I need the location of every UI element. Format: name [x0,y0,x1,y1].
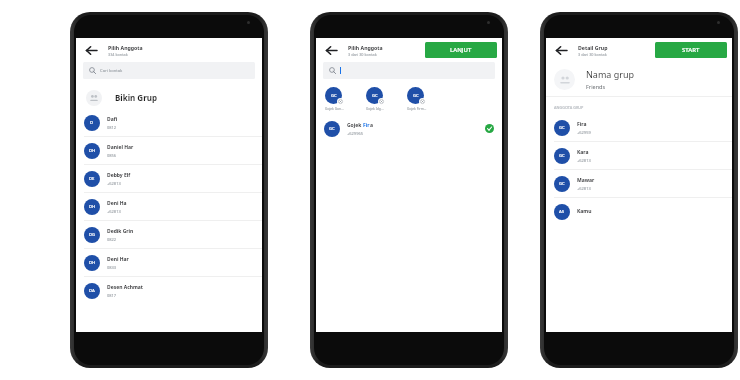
button[interactable]: Nama grup [586,68,724,90]
staticText: 334 kontak [108,52,128,57]
staticText: DE [89,176,95,182]
button[interactable]: DG [76,221,262,249]
staticText: GC [329,126,335,132]
staticText: Deni Har [107,256,129,263]
button[interactable]: DH [76,137,262,165]
staticText: Pilih Anggota [348,44,383,51]
staticText: +62813 [107,209,121,214]
button[interactable]: D [76,109,262,137]
button[interactable]: GC [325,87,359,110]
staticText: a [370,122,373,129]
button[interactable]: GC [407,87,441,110]
staticText: Bikin Grup [115,92,157,103]
staticText: +62813 [577,186,591,191]
button[interactable]: GC [546,170,732,198]
staticText: Pilih Anggota [108,44,143,51]
staticText: Daniel Har [107,144,134,151]
staticText: Kamu [577,208,592,215]
staticText: Fir [363,122,370,129]
staticText: Dafi [107,116,118,123]
staticText: DG [89,232,96,238]
staticText: GC [559,181,565,187]
staticText: Cari kontak [100,68,123,74]
button[interactable]: GC [366,87,400,110]
button[interactable]: Bikin Grup [82,85,184,110]
staticText: 0856 [107,153,117,158]
staticText: Nama grup [586,68,635,80]
button[interactable]: DH [76,193,262,221]
staticText: +629965 [347,131,364,136]
staticText: KONTAK GOJEK [84,101,110,106]
staticText: Gojek Firm… [407,106,427,110]
staticText: GC [331,93,337,99]
staticText: 0822 [107,237,117,242]
staticText: 3 dari 30 kontak [348,52,377,57]
staticText: +62813 [107,181,121,186]
staticText: D [90,120,94,126]
staticText: Gojek [347,122,363,129]
staticText: 0812 [107,125,117,130]
staticText: DH [89,260,96,266]
staticText: 0833 [107,265,117,270]
staticText: DA [89,288,95,294]
staticText: Deni Ha [107,200,127,207]
button[interactable]: Cari kontak [83,62,255,79]
staticText: Fira [577,121,587,128]
button[interactable]: DA [76,277,262,304]
staticText: AS [559,209,565,215]
button[interactable]: GC [546,114,732,142]
staticText: ANGGOTA GRUP [554,105,584,110]
button[interactable]: LANJUT [425,42,497,58]
staticText: GC [372,93,378,99]
button[interactable]: DE [76,165,262,193]
staticText: Kara [577,149,589,156]
staticText: +62813 [577,158,591,163]
button[interactable]: Back [553,42,569,58]
button[interactable]: AS [546,198,732,225]
staticText: Detail Grup [578,44,608,51]
button[interactable]: Back [323,42,339,58]
staticText: GC [413,93,419,99]
staticText: START [682,46,700,54]
staticText: LANJUT [450,46,472,54]
button[interactable]: Back [83,42,99,58]
staticText: GC [559,153,565,159]
staticText: Debby Elf [107,172,131,179]
button[interactable]: DH [76,249,262,277]
staticText: Friends [586,83,606,90]
staticText: Gojek Idg… [366,106,384,110]
staticText: Mawar [577,177,595,184]
staticText: Dedik Grin [107,228,134,235]
button[interactable]: GC [316,115,502,142]
staticText: DH [89,148,96,154]
staticText: +62959 [577,130,591,135]
staticText: 0817 [107,293,117,298]
button[interactable]: GC [546,142,732,170]
button[interactable] [323,62,495,79]
staticText: Gojek Gan… [325,106,344,110]
button[interactable]: START [655,42,727,58]
staticText: DH [89,204,96,210]
staticText: 3 dari 30 kontak [578,52,607,57]
staticText: Desen Achmat [107,284,144,291]
staticText: GC [559,125,565,131]
